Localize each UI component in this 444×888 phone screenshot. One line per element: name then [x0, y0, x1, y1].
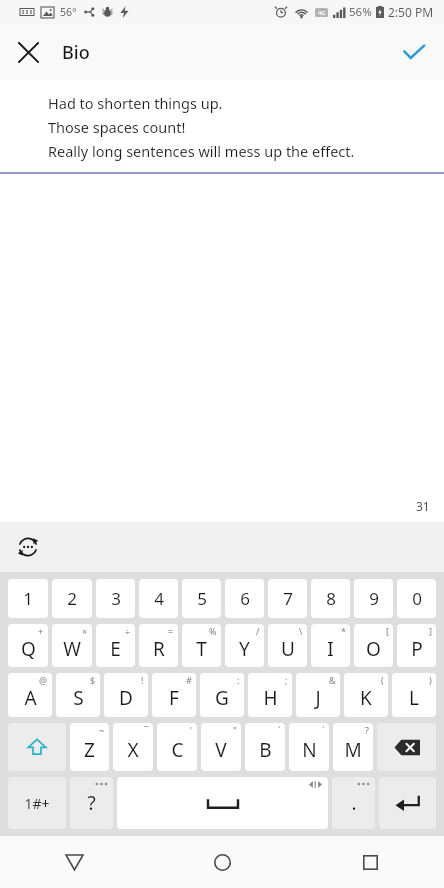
staticText: Had to shorten things up.	[48, 93, 223, 113]
staticText: @	[39, 674, 48, 686]
staticText: 2:50 PM	[388, 4, 434, 20]
staticText: R	[153, 636, 165, 662]
staticText: K	[360, 685, 372, 711]
staticText: M	[344, 737, 362, 763]
button[interactable]: T	[182, 624, 221, 667]
button[interactable]: J	[296, 673, 340, 717]
button[interactable]: 2	[52, 579, 92, 618]
button[interactable]: 3	[96, 579, 135, 618]
staticText: T	[196, 636, 207, 662]
staticText: A	[24, 685, 37, 711]
staticText: 4G	[318, 9, 326, 16]
staticText: %	[209, 625, 217, 637]
staticText: U	[281, 636, 295, 662]
button[interactable]: 6	[225, 579, 264, 618]
staticText: ×	[82, 625, 88, 637]
staticText: 1	[23, 587, 33, 610]
button[interactable]: U	[268, 624, 307, 667]
button[interactable]: S	[56, 673, 100, 717]
button[interactable]: Enter	[379, 777, 436, 829]
button[interactable]: .	[332, 777, 375, 829]
button[interactable]: W	[52, 624, 92, 667]
staticText: ~	[99, 724, 105, 736]
button[interactable]: N	[289, 723, 329, 771]
staticText: B	[259, 737, 272, 763]
staticText: 4	[154, 587, 164, 610]
button[interactable]: Back	[0, 836, 148, 888]
button[interactable]: 1	[8, 579, 48, 618]
button[interactable]: M	[333, 723, 373, 771]
staticText: X	[127, 737, 139, 763]
button[interactable]: Q	[8, 624, 48, 667]
button[interactable]: B	[245, 723, 285, 771]
button[interactable]: 1#+	[8, 777, 66, 829]
staticText: /	[256, 625, 260, 637]
staticText: 6	[240, 587, 250, 610]
staticText: E	[110, 636, 121, 662]
button[interactable]: D	[104, 673, 148, 717]
staticText: O	[366, 636, 381, 662]
staticText: 1#+	[24, 794, 50, 813]
staticText: '	[190, 724, 193, 736]
staticText: ÷	[125, 625, 131, 637]
button[interactable]: A	[8, 673, 52, 717]
staticText: I	[327, 636, 334, 662]
staticText: Z	[84, 737, 95, 763]
button[interactable]: Backspace	[377, 723, 436, 771]
button[interactable]: E	[96, 624, 135, 667]
staticText: *	[341, 625, 346, 637]
staticText: +	[38, 625, 44, 637]
button[interactable]: Recents	[296, 836, 444, 888]
staticText: P	[411, 636, 423, 662]
button[interactable]: Close	[8, 32, 48, 72]
staticText: 2	[67, 587, 77, 610]
button[interactable]: Switch input method	[8, 527, 48, 567]
staticText: =	[168, 625, 174, 637]
staticText: S	[73, 685, 84, 711]
staticText: W	[63, 636, 81, 662]
staticText: :	[237, 674, 240, 686]
staticText: Q	[21, 636, 36, 662]
staticText: 56°	[60, 5, 77, 19]
button[interactable]: Shift	[8, 723, 66, 771]
button[interactable]: Space	[117, 777, 328, 829]
staticText: ´	[278, 724, 281, 736]
button[interactable]: Home	[148, 836, 296, 888]
button[interactable]: Y	[225, 624, 264, 667]
button[interactable]: 5	[182, 579, 221, 618]
button[interactable]: G	[200, 673, 244, 717]
staticText: $	[90, 674, 96, 686]
button[interactable]: I	[311, 624, 350, 667]
staticText: F	[169, 685, 179, 711]
button[interactable]: R	[139, 624, 178, 667]
button[interactable]: L	[392, 673, 436, 717]
button[interactable]: V	[201, 723, 241, 771]
button[interactable]: 9	[354, 579, 393, 618]
staticText: #	[186, 674, 192, 686]
staticText: &	[329, 674, 336, 686]
button[interactable]: K	[344, 673, 388, 717]
button[interactable]: 7	[268, 579, 307, 618]
staticText: D	[119, 685, 133, 711]
staticText: 9	[369, 587, 379, 610]
button[interactable]: Z	[70, 723, 109, 771]
staticText: (	[381, 674, 384, 686]
staticText: H	[263, 685, 278, 711]
button[interactable]: 8	[311, 579, 350, 618]
button[interactable]: F	[152, 673, 196, 717]
button[interactable]: Save	[392, 30, 436, 74]
button[interactable]: C	[157, 723, 197, 771]
button[interactable]: P	[397, 624, 436, 667]
staticText: Those spaces count!	[48, 117, 186, 137]
staticText: ?	[87, 790, 96, 816]
staticText: 8	[326, 587, 336, 610]
button[interactable]: O	[354, 624, 393, 667]
staticText: G	[215, 685, 229, 711]
button[interactable]: ?	[70, 777, 113, 829]
button[interactable]: 0	[397, 579, 436, 618]
staticText: Bio	[62, 40, 90, 65]
button[interactable]: H	[248, 673, 292, 717]
button[interactable]: 4	[139, 579, 178, 618]
staticText: 5	[197, 587, 207, 610]
button[interactable]: X	[113, 723, 153, 771]
